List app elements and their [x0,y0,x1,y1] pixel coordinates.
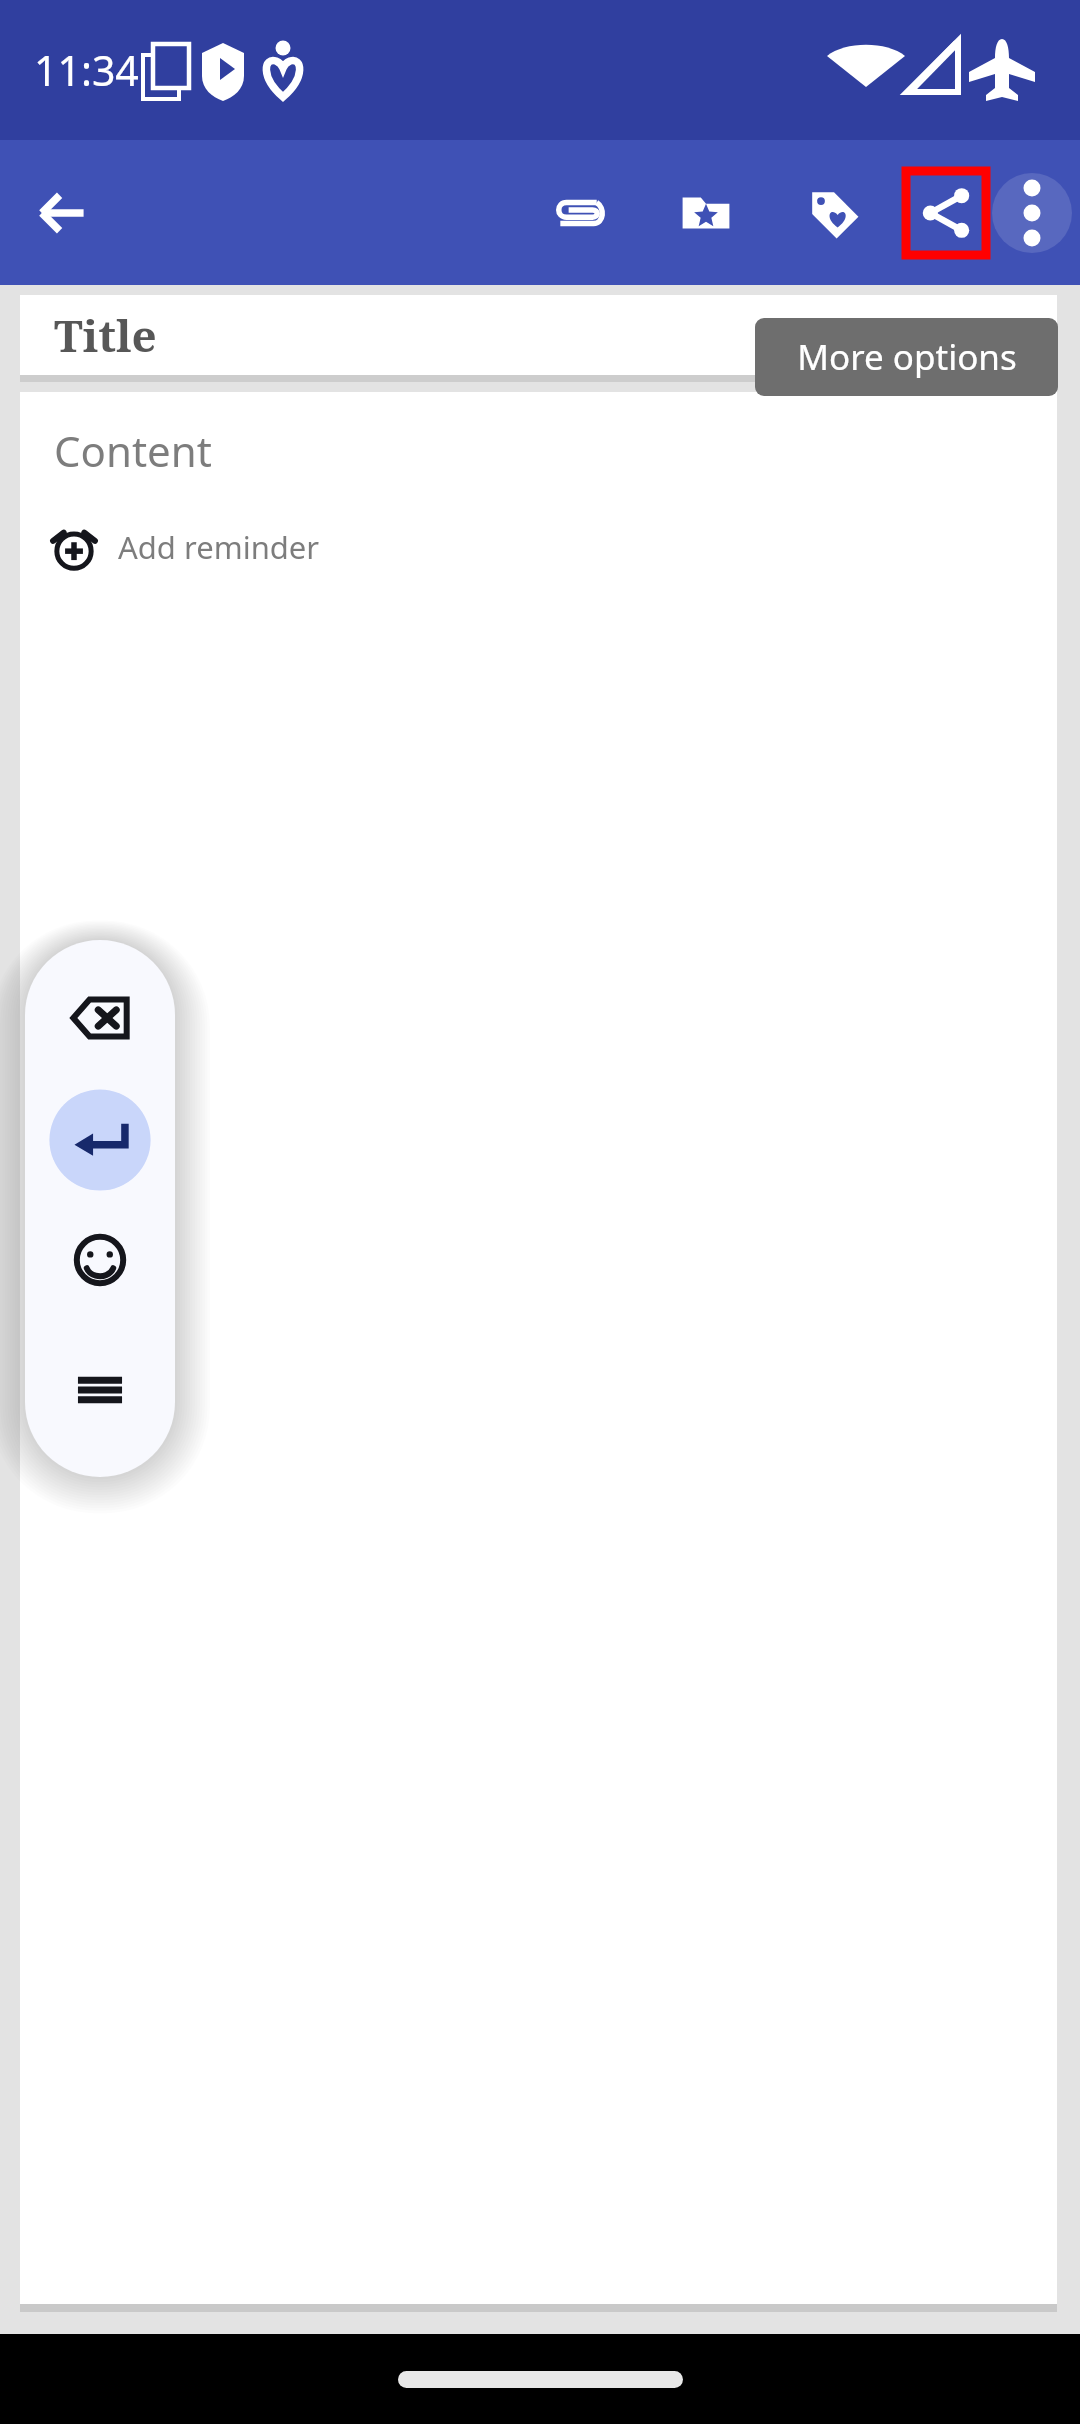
button[interactable]: Share [902,167,990,259]
button[interactable]: Title [20,295,1057,375]
button[interactable]: Labels [794,173,874,253]
button[interactable]: Move to folder [666,173,746,253]
button[interactable]: Home [398,2371,683,2388]
button[interactable]: Add reminder [48,521,320,573]
staticText: Add reminder [118,526,320,568]
button[interactable]: Navigate up [24,175,100,251]
button[interactable]: Enter [41,1094,159,1186]
button[interactable]: Menu [41,1344,159,1436]
staticText: More options [797,333,1017,381]
button[interactable]: Content [20,392,1057,2304]
button[interactable]: Attach [538,173,618,253]
staticText: Content [54,422,212,479]
staticText: 11:34 [34,42,139,98]
button[interactable]: More options [755,318,1058,396]
button[interactable]: Emoji [41,1214,159,1306]
staticText: Title [54,305,157,365]
button[interactable]: Backspace [41,972,159,1064]
button[interactable]: More options [992,173,1072,253]
